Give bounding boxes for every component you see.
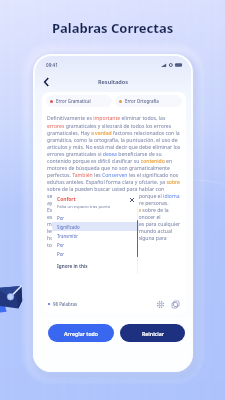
staticText: Error Gramatical bbox=[56, 98, 91, 104]
staticText: 98 Palabras bbox=[53, 301, 78, 307]
button[interactable]: Copy bbox=[170, 299, 180, 309]
button[interactable]: Significado bbox=[52, 222, 139, 231]
staticText: Resultados bbox=[98, 78, 129, 86]
button[interactable]: Por bbox=[52, 240, 139, 249]
staticText: Por bbox=[57, 251, 65, 257]
staticText: Palabras Correctas bbox=[52, 19, 174, 37]
staticText: Significado bbox=[57, 224, 80, 230]
button[interactable]: Por bbox=[52, 249, 139, 258]
staticText: Arreglar todo bbox=[64, 330, 99, 337]
staticText: Reiniciar bbox=[142, 330, 164, 337]
button[interactable]: Error Gramatical bbox=[46, 95, 112, 107]
staticText: Ignore in this bbox=[57, 263, 88, 269]
button[interactable]: Transmitir bbox=[52, 231, 139, 240]
staticText: Definitivamente es importante eliminar t… bbox=[47, 115, 181, 248]
button[interactable]: Back bbox=[39, 75, 53, 89]
staticText: Falta un espacio tras punto bbox=[57, 204, 111, 210]
staticText: Confort bbox=[57, 196, 76, 203]
staticText: Por bbox=[57, 242, 65, 248]
staticText: Transmitir bbox=[57, 233, 78, 239]
button[interactable]: Por bbox=[52, 213, 139, 222]
staticText: Por bbox=[57, 215, 65, 221]
button[interactable]: Reiniciar bbox=[120, 324, 185, 342]
staticText: 09:41 bbox=[46, 62, 58, 68]
button[interactable]: Arreglar todo bbox=[48, 324, 114, 342]
button[interactable]: Settings bbox=[155, 299, 165, 309]
staticText: Error Ortografía bbox=[125, 98, 159, 104]
button[interactable]: Error Ortografía bbox=[115, 95, 182, 107]
button[interactable]: Close bbox=[128, 196, 135, 203]
